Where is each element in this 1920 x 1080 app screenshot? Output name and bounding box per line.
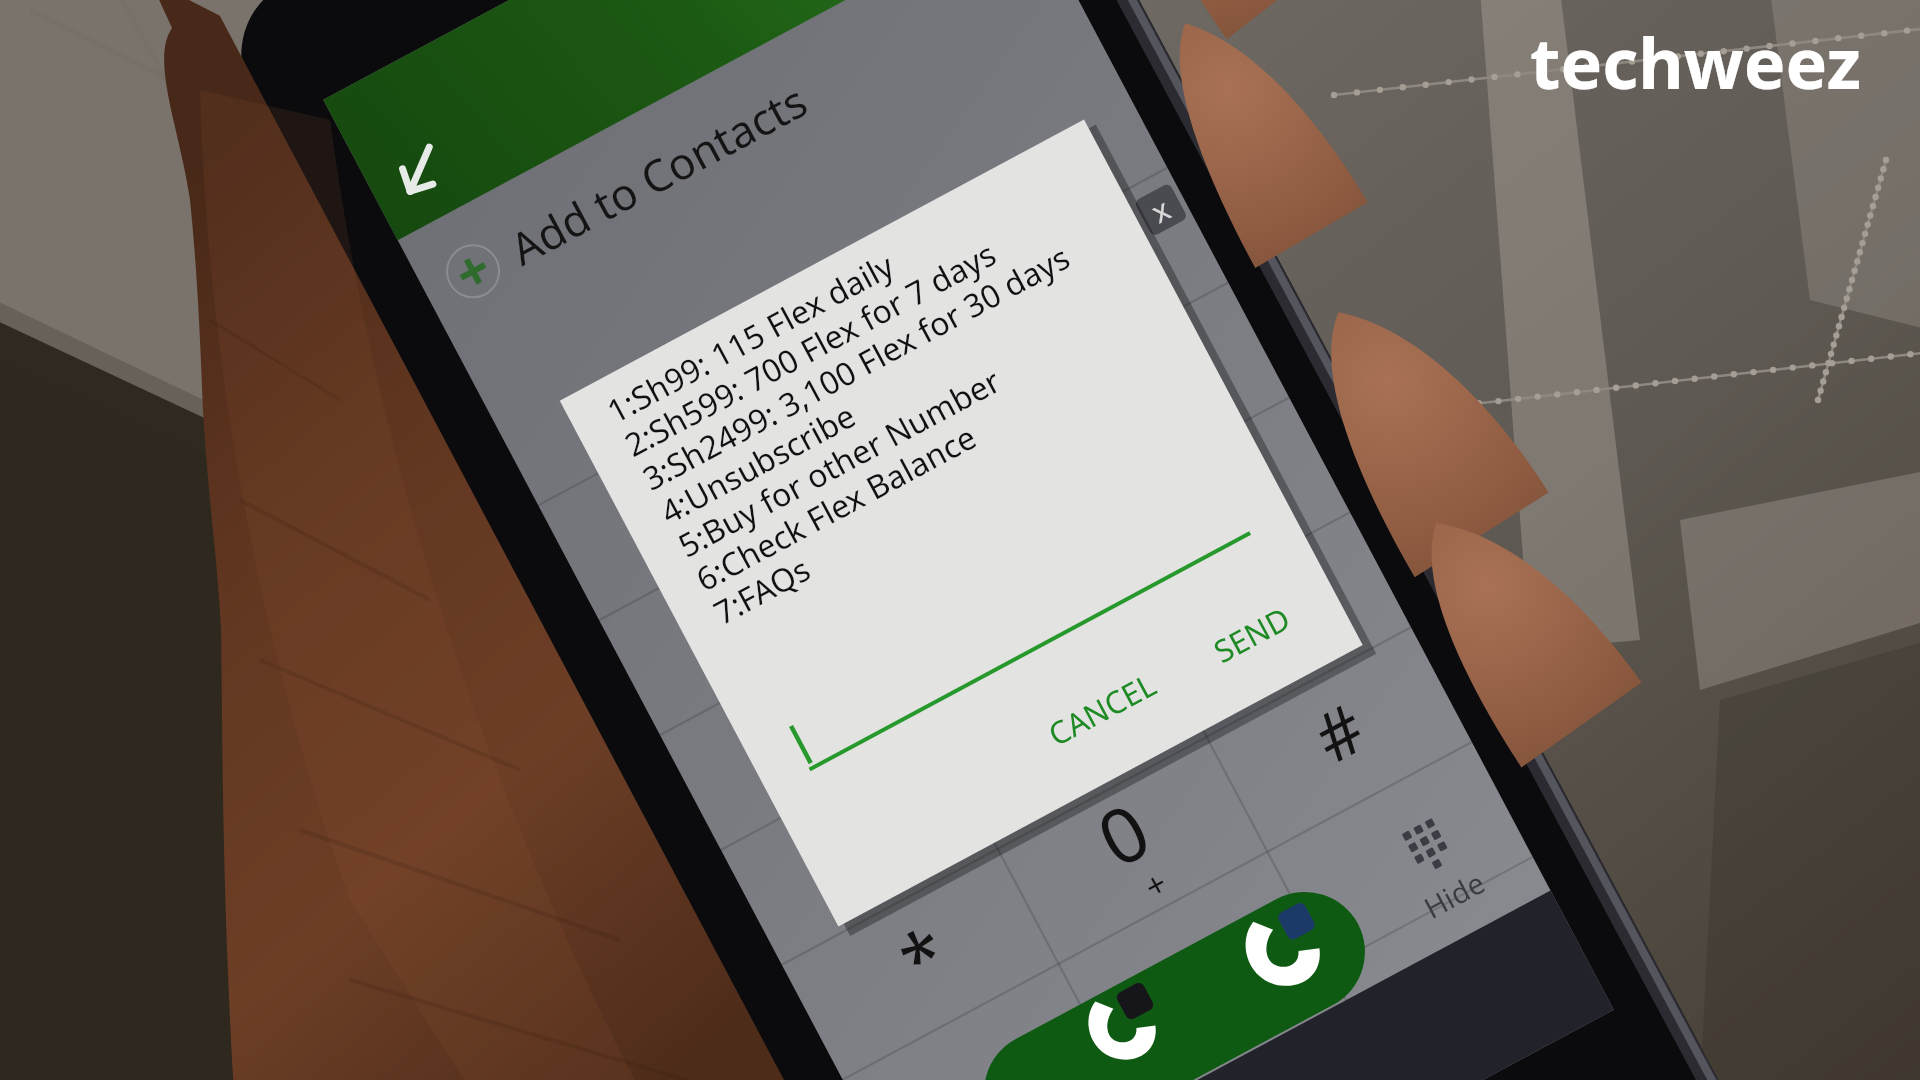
other: USSD menu dialog on a phone held in hand xyxy=(0,0,1920,1080)
